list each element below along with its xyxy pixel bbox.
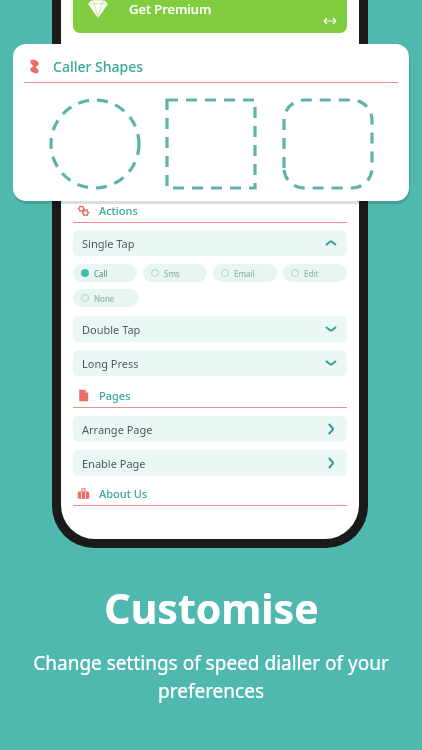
staticText: Call xyxy=(94,268,108,279)
button[interactable]: Email xyxy=(213,264,277,282)
staticText: Sms xyxy=(164,268,180,279)
button[interactable]: Long Press xyxy=(73,350,347,376)
staticText: Email xyxy=(234,268,255,279)
button[interactable]: Single Tap xyxy=(73,230,347,256)
staticText: Long Press xyxy=(82,356,139,371)
button[interactable]: Double Tap xyxy=(73,316,347,342)
button[interactable]: Circle shape xyxy=(49,98,141,190)
button[interactable]: None xyxy=(73,289,139,307)
staticText: Double Tap xyxy=(82,322,141,337)
button[interactable]: Arrange Page xyxy=(73,416,347,442)
staticText: Actions xyxy=(99,203,138,218)
staticText: Single Tap xyxy=(82,236,135,251)
staticText: Customise xyxy=(104,580,319,636)
staticText: Edit xyxy=(304,268,319,279)
button[interactable]: Square shape xyxy=(165,98,257,190)
staticText: About Us xyxy=(99,486,148,501)
button[interactable]: Get Premium xyxy=(73,0,347,33)
staticText: None xyxy=(94,293,115,304)
staticText: Enable Page xyxy=(82,456,146,471)
staticText: Caller Shapes xyxy=(53,57,144,76)
button[interactable]: Rounded square shape xyxy=(282,98,374,190)
button[interactable]: Call xyxy=(73,264,137,282)
button[interactable]: Sms xyxy=(143,264,207,282)
staticText: Pages xyxy=(99,388,131,403)
staticText: Arrange Page xyxy=(82,422,153,437)
button[interactable]: Enable Page xyxy=(73,450,347,476)
staticText: Get Premium xyxy=(129,0,212,18)
button[interactable]: Edit xyxy=(283,264,347,282)
staticText: Change settings of speed dialler of your… xyxy=(16,650,406,704)
